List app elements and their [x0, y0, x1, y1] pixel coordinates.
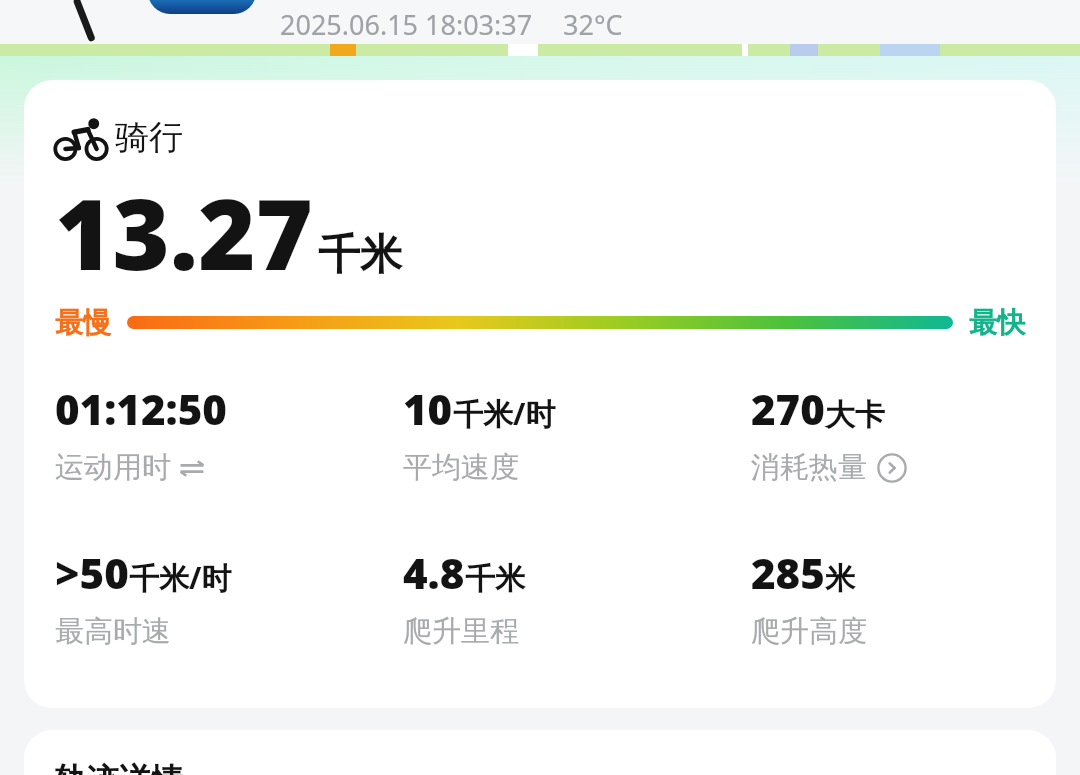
- button[interactable]: 骑行: [24, 80, 1056, 708]
- staticText: 平均速度: [403, 449, 519, 486]
- staticText: 32°C: [563, 6, 623, 43]
- button[interactable]: Back: [64, 0, 108, 44]
- staticText: 285: [751, 544, 825, 601]
- staticText: 13.27: [55, 165, 314, 298]
- staticText: 米: [825, 560, 855, 598]
- staticText: 4.8: [403, 544, 465, 601]
- staticText: 千米/时: [453, 393, 556, 434]
- staticText: 270: [751, 380, 825, 437]
- button[interactable]: 01:12:50: [55, 380, 227, 486]
- staticText: 2025.06.15 18:03:37: [280, 6, 533, 43]
- staticText: 千米: [465, 560, 525, 598]
- staticText: 千米: [318, 229, 402, 282]
- staticText: 最高时速: [55, 613, 171, 650]
- button[interactable]: 10: [403, 380, 556, 486]
- staticText: 10: [403, 380, 453, 437]
- staticText: 骑行: [115, 116, 183, 159]
- button[interactable]: 骑行: [55, 116, 183, 159]
- staticText: 最慢: [55, 305, 111, 340]
- button[interactable]: 270: [751, 380, 907, 486]
- staticText: 千米/时: [129, 557, 232, 598]
- staticText: 最快: [969, 305, 1025, 340]
- button[interactable]: >50: [55, 544, 232, 650]
- staticText: 01:12:50: [55, 380, 227, 437]
- button[interactable]: 轨迹详情: [24, 730, 1056, 775]
- button[interactable]: 4.8: [403, 544, 525, 650]
- staticText: 轨迹详情: [55, 760, 183, 775]
- button[interactable]: Profile: [148, 0, 256, 14]
- staticText: 运动用时: [55, 449, 171, 486]
- staticText: 大卡: [825, 396, 885, 434]
- staticText: >50: [55, 544, 129, 601]
- button[interactable]: 285: [751, 544, 867, 650]
- staticText: 爬升高度: [751, 613, 867, 650]
- staticText: 消耗热量: [751, 449, 867, 486]
- staticText: 爬升里程: [403, 613, 519, 650]
